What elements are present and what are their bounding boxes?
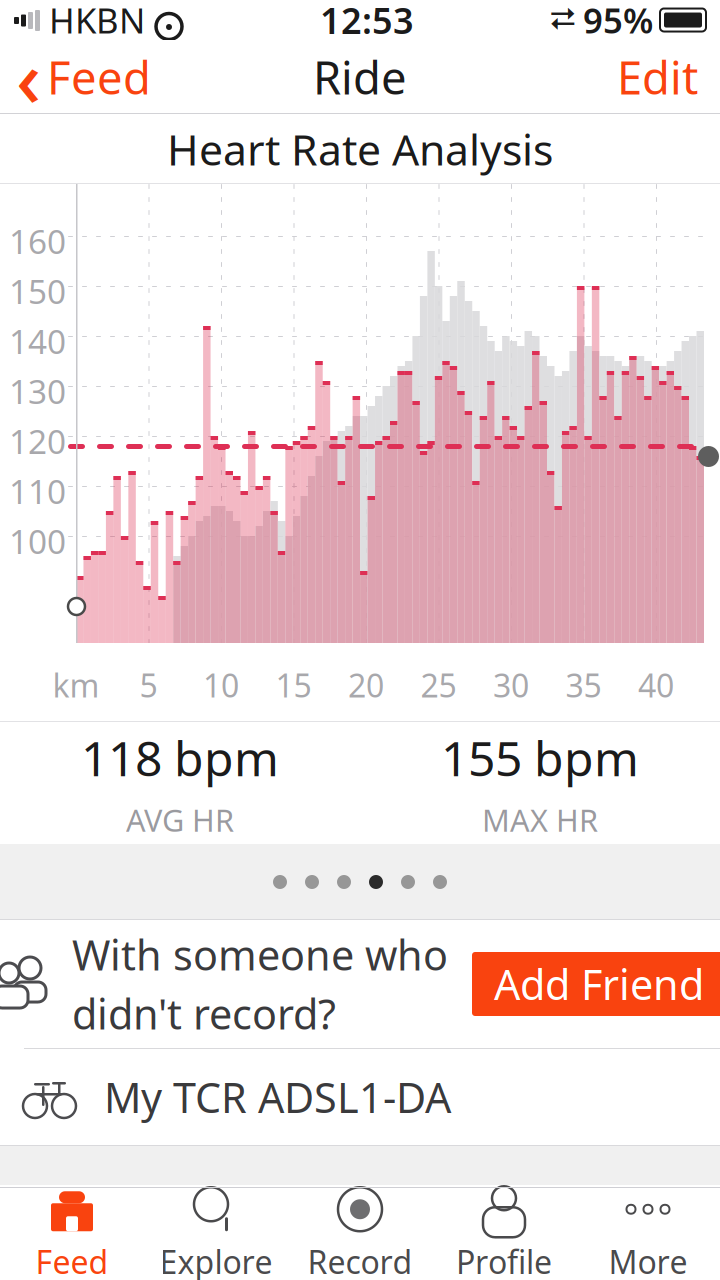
staticText: 155 bpm	[441, 726, 639, 789]
staticText: Feed	[35, 1240, 108, 1280]
staticText: Ride	[313, 47, 407, 107]
staticText: 95%	[583, 0, 653, 43]
staticText: Feed	[47, 47, 151, 107]
staticText: 160	[9, 219, 66, 263]
staticText: 5	[139, 664, 157, 706]
staticText: Profile	[456, 1240, 552, 1280]
staticText: HKBN	[49, 0, 145, 43]
staticText: ⮂	[550, 4, 576, 36]
staticText: 100	[9, 519, 66, 563]
staticText: didn't record?	[72, 986, 336, 1041]
button[interactable]: More	[576, 1185, 720, 1280]
staticText: Heart Rate Analysis	[167, 121, 553, 177]
button[interactable]: My TCR ADSL1-DA	[0, 1049, 720, 1145]
button[interactable]: Explore	[144, 1185, 288, 1280]
staticText: 140	[9, 319, 66, 363]
staticText: 118 bpm	[81, 726, 279, 789]
staticText: 20	[348, 664, 384, 706]
button[interactable]: Edit	[595, 40, 720, 114]
staticText: With someone who	[72, 927, 448, 982]
staticText: 40	[638, 664, 674, 706]
staticText: Add Friend	[494, 957, 704, 1011]
staticText: My TCR ADSL1-DA	[104, 1070, 451, 1124]
staticText: 150	[9, 269, 66, 313]
staticText: 30	[493, 664, 529, 706]
staticText: 120	[9, 419, 66, 463]
staticText: More	[608, 1240, 687, 1280]
staticText: 130	[9, 369, 66, 413]
button[interactable]: Profile	[432, 1185, 576, 1280]
staticText: 10	[203, 664, 239, 706]
staticText: AVG HR	[126, 799, 234, 840]
staticText: 15	[275, 664, 311, 706]
staticText: Edit	[617, 47, 698, 107]
button[interactable]: ‹	[0, 40, 167, 114]
staticText: 12:53	[320, 0, 414, 44]
staticText: MAX HR	[482, 799, 598, 840]
button[interactable]: Feed	[0, 1185, 144, 1280]
staticText: 110	[9, 469, 66, 513]
button[interactable]: Record	[288, 1185, 432, 1280]
staticText: Explore	[159, 1240, 272, 1280]
staticText: km	[52, 664, 99, 706]
staticText: 35	[565, 664, 601, 706]
staticText: ‹	[16, 26, 41, 128]
button[interactable]: Add Friend	[472, 952, 720, 1016]
staticText: 25	[420, 664, 456, 706]
staticText: Record	[307, 1240, 412, 1280]
